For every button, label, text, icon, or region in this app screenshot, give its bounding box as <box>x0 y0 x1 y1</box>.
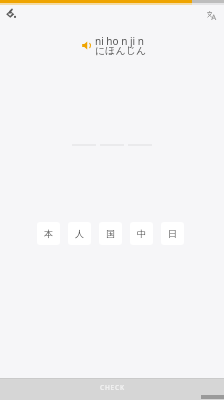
button[interactable]: Translate <box>202 6 220 24</box>
staticText: 人 <box>75 228 84 239</box>
button[interactable]: 本 <box>37 222 60 245</box>
button[interactable]: Hint <box>1 4 19 22</box>
staticText: CHECK <box>100 383 125 392</box>
staticText: ni ho n ji n <box>95 34 144 48</box>
button[interactable]: 日 <box>161 222 184 245</box>
button[interactable]: 人 <box>68 222 91 245</box>
button[interactable]: CHECK <box>0 378 224 400</box>
button[interactable]: 国 <box>99 222 122 245</box>
staticText: にほんじん <box>95 44 147 57</box>
button[interactable]: Play audio <box>79 38 93 52</box>
staticText: 国 <box>106 228 115 239</box>
staticText: 日 <box>168 228 177 239</box>
staticText: 中 <box>137 228 146 239</box>
staticText: 本 <box>44 228 53 239</box>
button[interactable]: 中 <box>130 222 153 245</box>
